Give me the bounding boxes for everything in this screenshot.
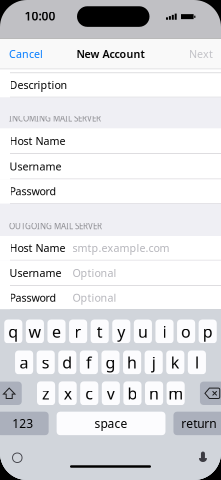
staticText: o <box>181 321 191 342</box>
staticText: b <box>127 383 137 404</box>
button[interactable]: z <box>37 381 55 405</box>
button[interactable]: Next <box>183 38 221 69</box>
staticText: Password <box>9 184 56 198</box>
staticText: s <box>42 352 50 373</box>
button[interactable]: Host Name <box>0 236 221 260</box>
button[interactable]: v <box>102 381 120 405</box>
button[interactable]: l <box>188 350 206 374</box>
button[interactable]: Username <box>0 260 221 286</box>
staticText: space <box>94 415 127 431</box>
button[interactable]: f <box>80 350 98 374</box>
staticText: i <box>162 321 166 342</box>
staticText: a <box>20 352 29 373</box>
staticText: h <box>127 352 137 373</box>
staticText: e <box>52 321 61 342</box>
button[interactable]: n <box>145 381 163 405</box>
staticText: z <box>42 383 50 404</box>
button[interactable]: Dictation <box>189 443 216 472</box>
button[interactable]: t <box>91 320 109 343</box>
button[interactable]: m <box>167 381 185 405</box>
button[interactable]: a <box>15 350 33 374</box>
button[interactable]: r <box>69 320 87 343</box>
staticText: smtp.example.com <box>72 241 169 255</box>
button[interactable]: j <box>145 350 163 374</box>
staticText: f <box>86 352 92 373</box>
staticText: n <box>149 383 159 404</box>
staticText: Cancel <box>9 47 43 61</box>
staticText: OUTGOING MAIL SERVER <box>9 221 102 231</box>
staticText: 123 <box>12 415 33 431</box>
staticText: Host Name <box>9 241 65 255</box>
staticText: INCOMING MAIL SERVER <box>9 113 101 124</box>
button[interactable]: Cancel <box>0 38 49 69</box>
staticText: y <box>117 321 125 342</box>
button[interactable]: space <box>57 412 165 435</box>
button[interactable]: e <box>47 320 66 343</box>
staticText: l <box>195 352 199 373</box>
button[interactable]: i <box>155 320 173 343</box>
staticText: t <box>97 321 103 342</box>
staticText: v <box>107 383 115 404</box>
button[interactable]: Host Name <box>0 128 221 154</box>
button[interactable]: q <box>4 320 22 343</box>
button[interactable]: d <box>58 350 76 374</box>
staticText: Password <box>9 290 56 305</box>
button[interactable]: s <box>37 350 55 374</box>
button[interactable]: Emoji <box>4 445 30 470</box>
button[interactable]: h <box>123 350 141 374</box>
staticText: Username <box>9 266 61 280</box>
button[interactable]: u <box>134 320 152 343</box>
staticText: Optional <box>72 290 116 305</box>
staticText: p <box>203 321 213 342</box>
staticText: d <box>62 352 72 373</box>
staticText: m <box>168 383 183 404</box>
button[interactable]: c <box>80 381 98 405</box>
button[interactable]: o <box>177 320 195 343</box>
staticText: 10:00 <box>24 8 55 24</box>
button[interactable]: Password <box>0 286 221 310</box>
staticText: return <box>181 415 216 431</box>
staticText: w <box>28 321 41 342</box>
button[interactable]: p <box>199 320 217 343</box>
staticText: Description <box>9 78 67 92</box>
staticText: q <box>8 321 18 342</box>
button[interactable]: b <box>123 381 141 405</box>
staticText: k <box>171 352 180 373</box>
button[interactable]: y <box>112 320 130 343</box>
button[interactable]: x <box>59 381 77 405</box>
staticText: Host Name <box>9 134 65 148</box>
staticText: New Account <box>76 47 144 61</box>
button[interactable]: Description <box>0 69 221 97</box>
staticText: Next <box>189 47 213 61</box>
staticText: r <box>75 321 82 342</box>
staticText: Optional <box>72 266 116 280</box>
staticText: x <box>64 383 72 404</box>
staticText: g <box>105 352 115 373</box>
button[interactable]: 123 <box>0 412 49 435</box>
staticText: u <box>138 321 148 342</box>
staticText: c <box>85 383 93 404</box>
button[interactable]: k <box>166 350 184 374</box>
button[interactable]: Password <box>0 179 221 204</box>
button[interactable]: Shift <box>0 382 22 405</box>
button[interactable]: return <box>173 412 221 435</box>
button[interactable]: Username <box>0 154 221 179</box>
button[interactable]: Delete <box>200 382 221 405</box>
staticText: Username <box>9 159 61 173</box>
staticText: j <box>152 352 156 373</box>
button[interactable]: g <box>101 350 120 374</box>
button[interactable]: w <box>26 320 44 343</box>
